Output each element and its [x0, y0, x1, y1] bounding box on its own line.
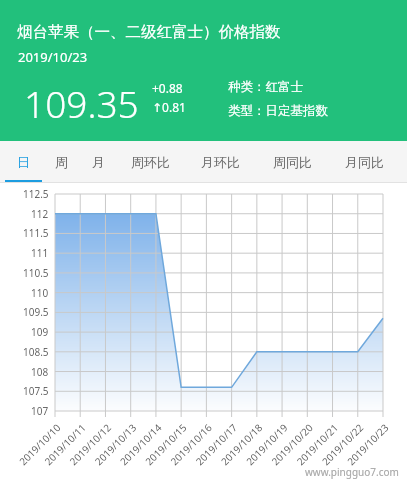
- staticText: 周: [55, 154, 68, 170]
- staticText: 月环比: [201, 154, 240, 170]
- button[interactable]: 月: [80, 141, 117, 183]
- staticText: 周环比: [131, 154, 170, 170]
- staticText: ↑0.81: [152, 99, 186, 115]
- staticText: 月: [92, 154, 105, 170]
- staticText: 日: [17, 154, 30, 170]
- staticText: +0.88: [152, 80, 183, 96]
- staticText: 烟台苹果（一、二级红富士）价格指数: [17, 22, 281, 42]
- button[interactable]: 月环比: [184, 141, 256, 183]
- staticText: 种类：红富士: [228, 79, 303, 95]
- button[interactable]: 月同比: [328, 141, 400, 183]
- staticText: 类型：日定基指数: [228, 103, 328, 119]
- staticText: 2019/10/23: [18, 48, 88, 66]
- button[interactable]: 周: [43, 141, 80, 183]
- staticText: 周同比: [273, 154, 312, 170]
- staticText: 月同比: [345, 154, 384, 170]
- button[interactable]: 日: [3, 141, 43, 183]
- button[interactable]: 周同比: [256, 141, 328, 183]
- staticText: 109.35: [24, 78, 139, 128]
- button[interactable]: 周环比: [117, 141, 184, 183]
